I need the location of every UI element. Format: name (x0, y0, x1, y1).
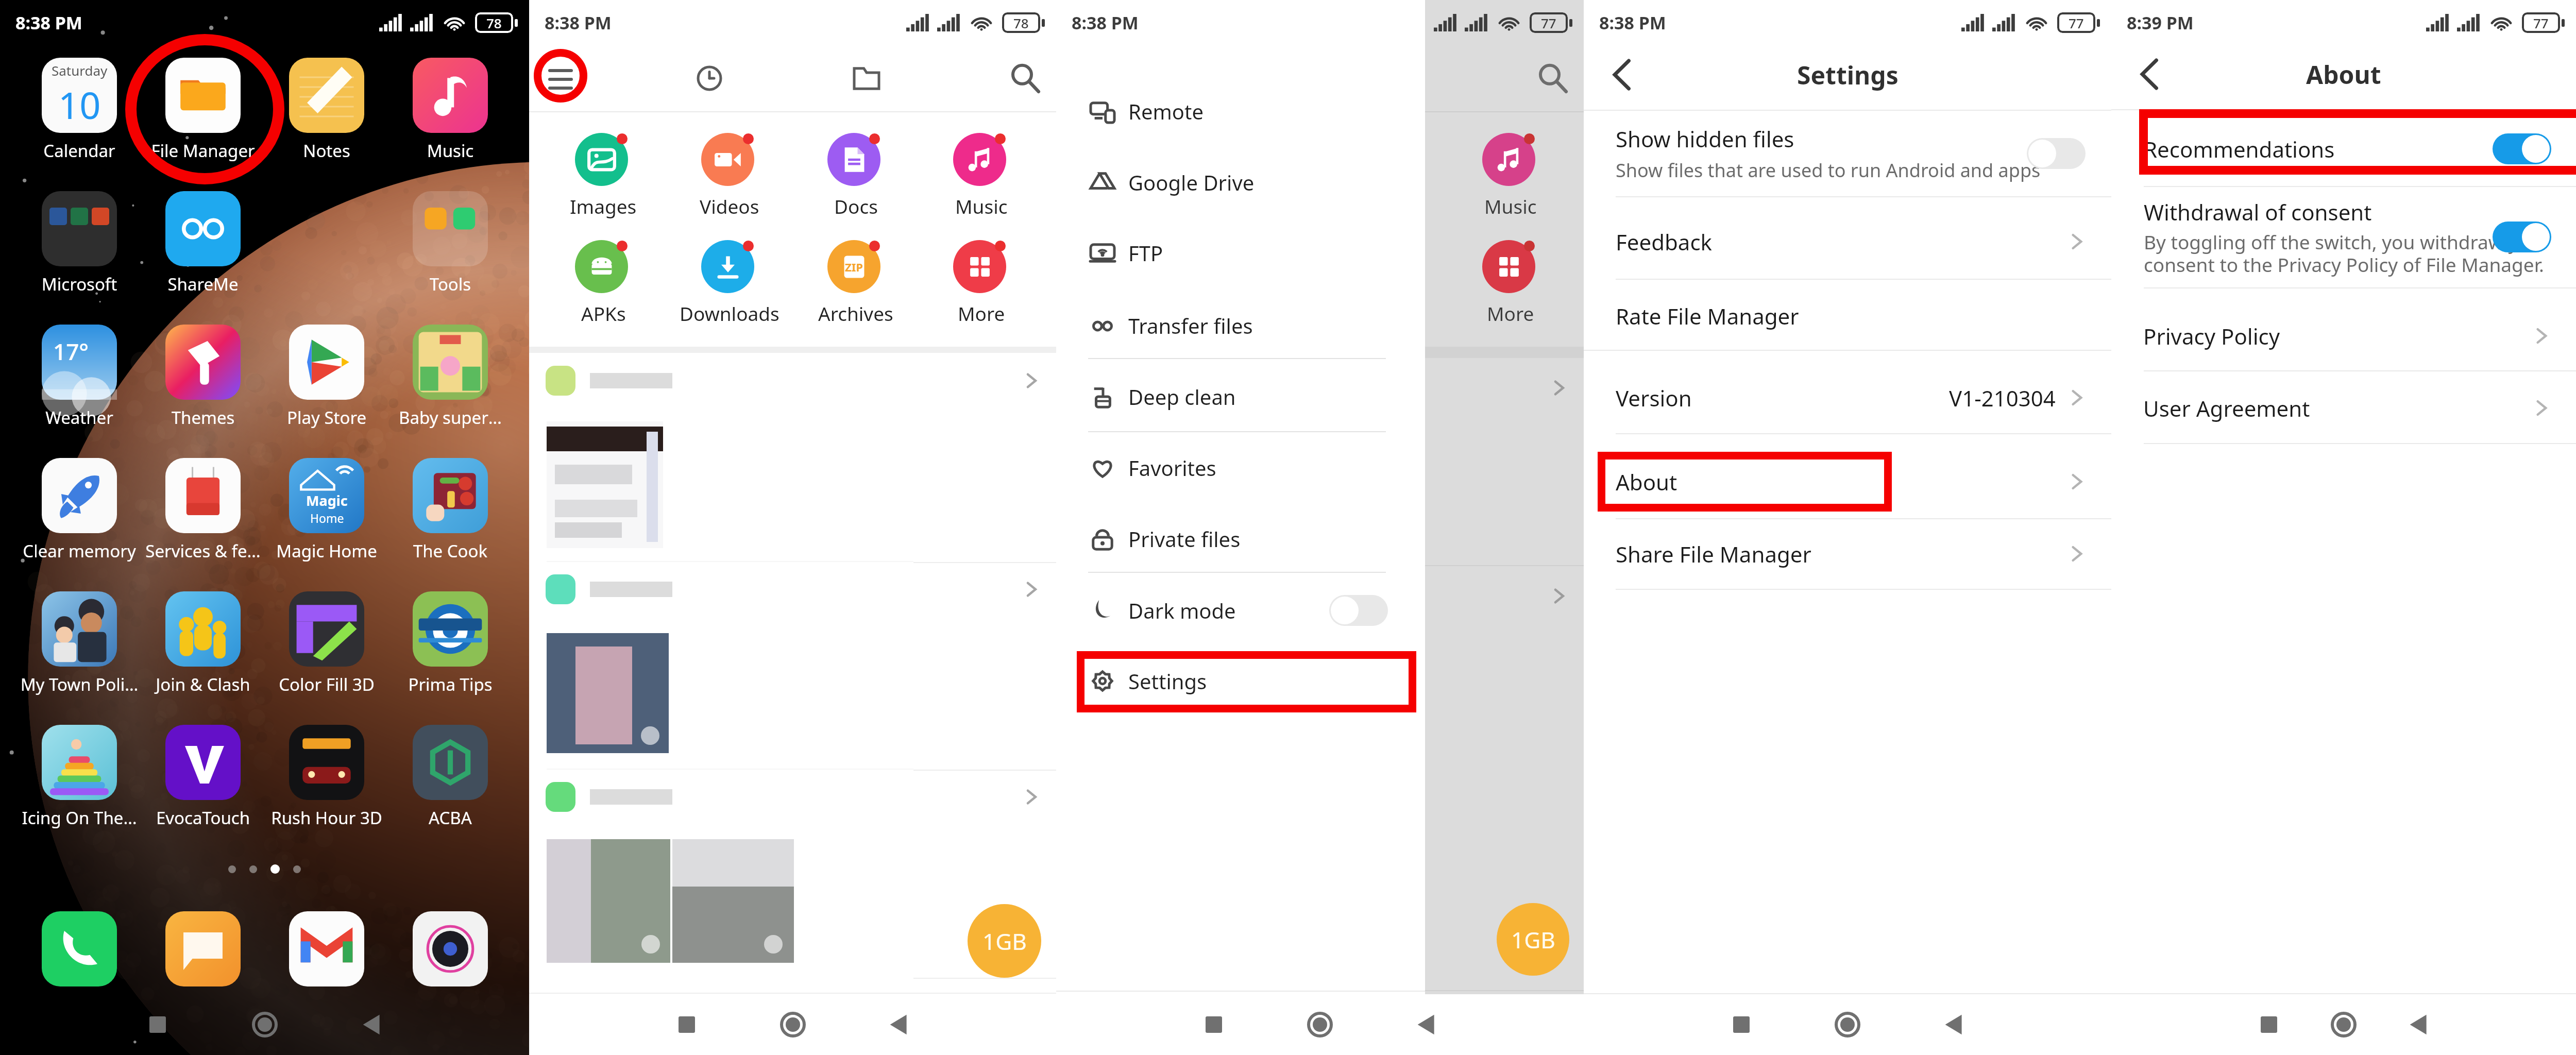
button[interactable]: Recent (684, 53, 735, 104)
button[interactable]: ShareMe (144, 187, 262, 311)
button[interactable]: On (2493, 222, 2551, 252)
button[interactable]: Messages (165, 911, 241, 986)
button[interactable]: Tools (391, 187, 510, 311)
button[interactable]: Notes (267, 54, 386, 177)
button[interactable]: ACBA (391, 721, 510, 844)
button[interactable]: File group (546, 767, 1043, 827)
staticText: My Town Poli… (20, 673, 139, 696)
staticText: Play Store (267, 406, 386, 429)
button[interactable]: Home (234, 994, 296, 1055)
staticText: FTP (1128, 239, 1163, 267)
button[interactable]: Off (1329, 595, 1388, 626)
button[interactable]: Back (2121, 46, 2177, 103)
button[interactable]: Baby superm… (391, 320, 510, 444)
button[interactable]: Share File Manager (1584, 519, 2111, 589)
button[interactable]: File group (546, 351, 1043, 411)
button[interactable]: Magic (267, 454, 386, 577)
button[interactable]: Downloads (672, 237, 787, 320)
button[interactable]: Join & Clash (144, 587, 262, 711)
button[interactable]: Play Store (267, 320, 386, 444)
button[interactable]: Rush Hour 3D (267, 721, 386, 844)
button[interactable]: Recents (127, 994, 189, 1055)
button[interactable]: File Manager (144, 54, 262, 177)
staticText: More (1487, 300, 1534, 326)
button[interactable]: Settings (1056, 649, 1425, 713)
button[interactable]: Services & fe… (144, 454, 262, 577)
button[interactable]: Phone (42, 911, 117, 986)
button[interactable]: Show hidden files (1584, 111, 2111, 196)
button[interactable]: Menu (535, 53, 586, 104)
button[interactable]: Off (2027, 138, 2086, 169)
staticText: Withdrawal of consent (2144, 197, 2372, 227)
button[interactable]: Color Fill 3D (267, 587, 386, 711)
button[interactable]: Google Drive (1056, 150, 1425, 214)
staticText: Music (955, 193, 1008, 219)
button[interactable]: Rate File Manager (1584, 281, 2111, 351)
button[interactable]: File group (546, 559, 1043, 619)
button[interactable]: Clear memory (20, 454, 139, 577)
staticText: V1-210304 (1949, 383, 2056, 413)
button[interactable]: Storage 1GB (968, 904, 1041, 978)
button[interactable]: User Agreement (2111, 373, 2576, 443)
button[interactable]: Storage 1GB (1497, 903, 1569, 976)
button[interactable]: Camera (413, 911, 488, 986)
button[interactable]: The Cook (391, 454, 510, 577)
button[interactable]: Search (999, 53, 1051, 104)
button[interactable]: Icing On The … (20, 721, 139, 844)
button[interactable]: Themes (144, 320, 262, 444)
button[interactable]: Back (2387, 994, 2449, 1055)
button[interactable]: EvocaTouch (144, 721, 262, 844)
button[interactable]: Prima Tips (391, 587, 510, 711)
button[interactable]: FTP (1056, 221, 1425, 285)
button[interactable]: Search (1527, 53, 1579, 104)
button[interactable]: Back (1593, 46, 1650, 103)
staticText: Downloads (680, 300, 779, 326)
staticText: Settings (1128, 667, 1207, 695)
button[interactable]: Dark mode (1056, 578, 1425, 642)
button[interactable]: Deep clean (1056, 365, 1425, 429)
button[interactable]: Docs (798, 130, 913, 213)
button[interactable]: About (1584, 447, 2111, 517)
button[interactable]: Home (2313, 994, 2375, 1055)
button[interactable]: Back (1395, 994, 1457, 1055)
button[interactable]: Home (1817, 994, 1878, 1055)
staticText: Privacy Policy (2143, 321, 2280, 351)
button[interactable]: Home (1289, 994, 1351, 1055)
button[interactable]: Favorites (1056, 436, 1425, 500)
button[interactable]: Saturday (20, 54, 139, 177)
button[interactable]: Microsoft (20, 187, 139, 311)
button[interactable]: On (2493, 133, 2551, 164)
button[interactable]: Privacy Policy (2111, 301, 2576, 371)
button[interactable]: Recents (1183, 994, 1245, 1055)
button[interactable]: 17° (20, 320, 139, 444)
button[interactable]: Remote (1056, 79, 1425, 143)
button[interactable]: Back (341, 994, 402, 1055)
button[interactable]: Home (762, 994, 824, 1055)
button[interactable]: Recents (656, 994, 718, 1055)
button[interactable]: Feedback (1584, 207, 2111, 277)
button[interactable]: Recents (2238, 994, 2300, 1055)
button[interactable]: Recommendations (2111, 113, 2576, 185)
button[interactable]: Back (868, 994, 929, 1055)
button[interactable]: Private files (1056, 507, 1425, 571)
button[interactable]: More (924, 237, 1039, 320)
button[interactable]: Music (391, 54, 510, 177)
button[interactable]: Videos (672, 130, 787, 213)
button[interactable]: Folders (841, 53, 892, 104)
button[interactable]: APKs (546, 237, 661, 320)
button[interactable]: My Town Poli… (20, 587, 139, 711)
button[interactable]: Version (1584, 363, 2111, 433)
staticText: Home (310, 510, 344, 526)
staticText: Remote (1128, 97, 1204, 125)
button[interactable]: ZIP (798, 237, 913, 320)
button[interactable]: Gmail (289, 911, 364, 986)
button[interactable]: Back (1923, 994, 1985, 1055)
button[interactable]: Recents (1710, 994, 1772, 1055)
button[interactable]: Music (924, 130, 1039, 213)
button[interactable] (267, 187, 386, 311)
button[interactable]: Withdrawal of consent (2111, 187, 2576, 287)
button[interactable]: Images (546, 130, 661, 213)
button[interactable]: Transfer files (1056, 294, 1425, 358)
staticText: Microsoft (20, 273, 139, 296)
staticText: Clear memory (20, 539, 139, 563)
